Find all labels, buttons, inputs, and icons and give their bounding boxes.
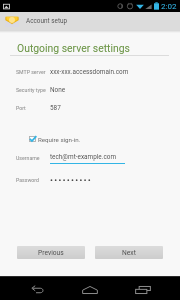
button[interactable]: Security type xyxy=(0,83,180,97)
staticText: Security type xyxy=(16,87,46,93)
button[interactable]: SMTP server xyxy=(0,65,180,79)
staticText: 2:02 xyxy=(161,2,177,11)
button[interactable]: Require sign-in. xyxy=(0,132,180,146)
staticText: None xyxy=(50,86,66,94)
staticText: Next xyxy=(122,249,136,257)
button[interactable]: Port xyxy=(0,101,180,115)
button[interactable]: Email xyxy=(0,12,180,30)
staticText: SMTP server xyxy=(16,69,46,75)
button[interactable]: Password xyxy=(0,173,180,187)
staticText: Port xyxy=(16,105,26,111)
staticText: Password xyxy=(16,177,39,183)
other: Email xyxy=(5,15,19,27)
button[interactable]: Recent apps xyxy=(130,280,155,299)
staticText: Outgoing server settings xyxy=(17,42,130,54)
staticText: xxx-xxx.accessdomain.com xyxy=(50,68,129,76)
staticText: Previous xyxy=(38,249,64,257)
staticText: 587 xyxy=(50,104,61,112)
button[interactable]: Next xyxy=(95,246,163,259)
staticText: tech@mt-example.com xyxy=(50,153,116,161)
button[interactable]: Previous xyxy=(17,246,85,259)
staticText: Require sign-in. xyxy=(38,136,81,143)
button[interactable]: Back xyxy=(26,280,50,299)
staticText: Account setup xyxy=(26,17,68,25)
staticText: Username xyxy=(16,155,40,161)
button[interactable]: Home xyxy=(78,280,102,299)
button[interactable]: Username xyxy=(0,151,180,165)
